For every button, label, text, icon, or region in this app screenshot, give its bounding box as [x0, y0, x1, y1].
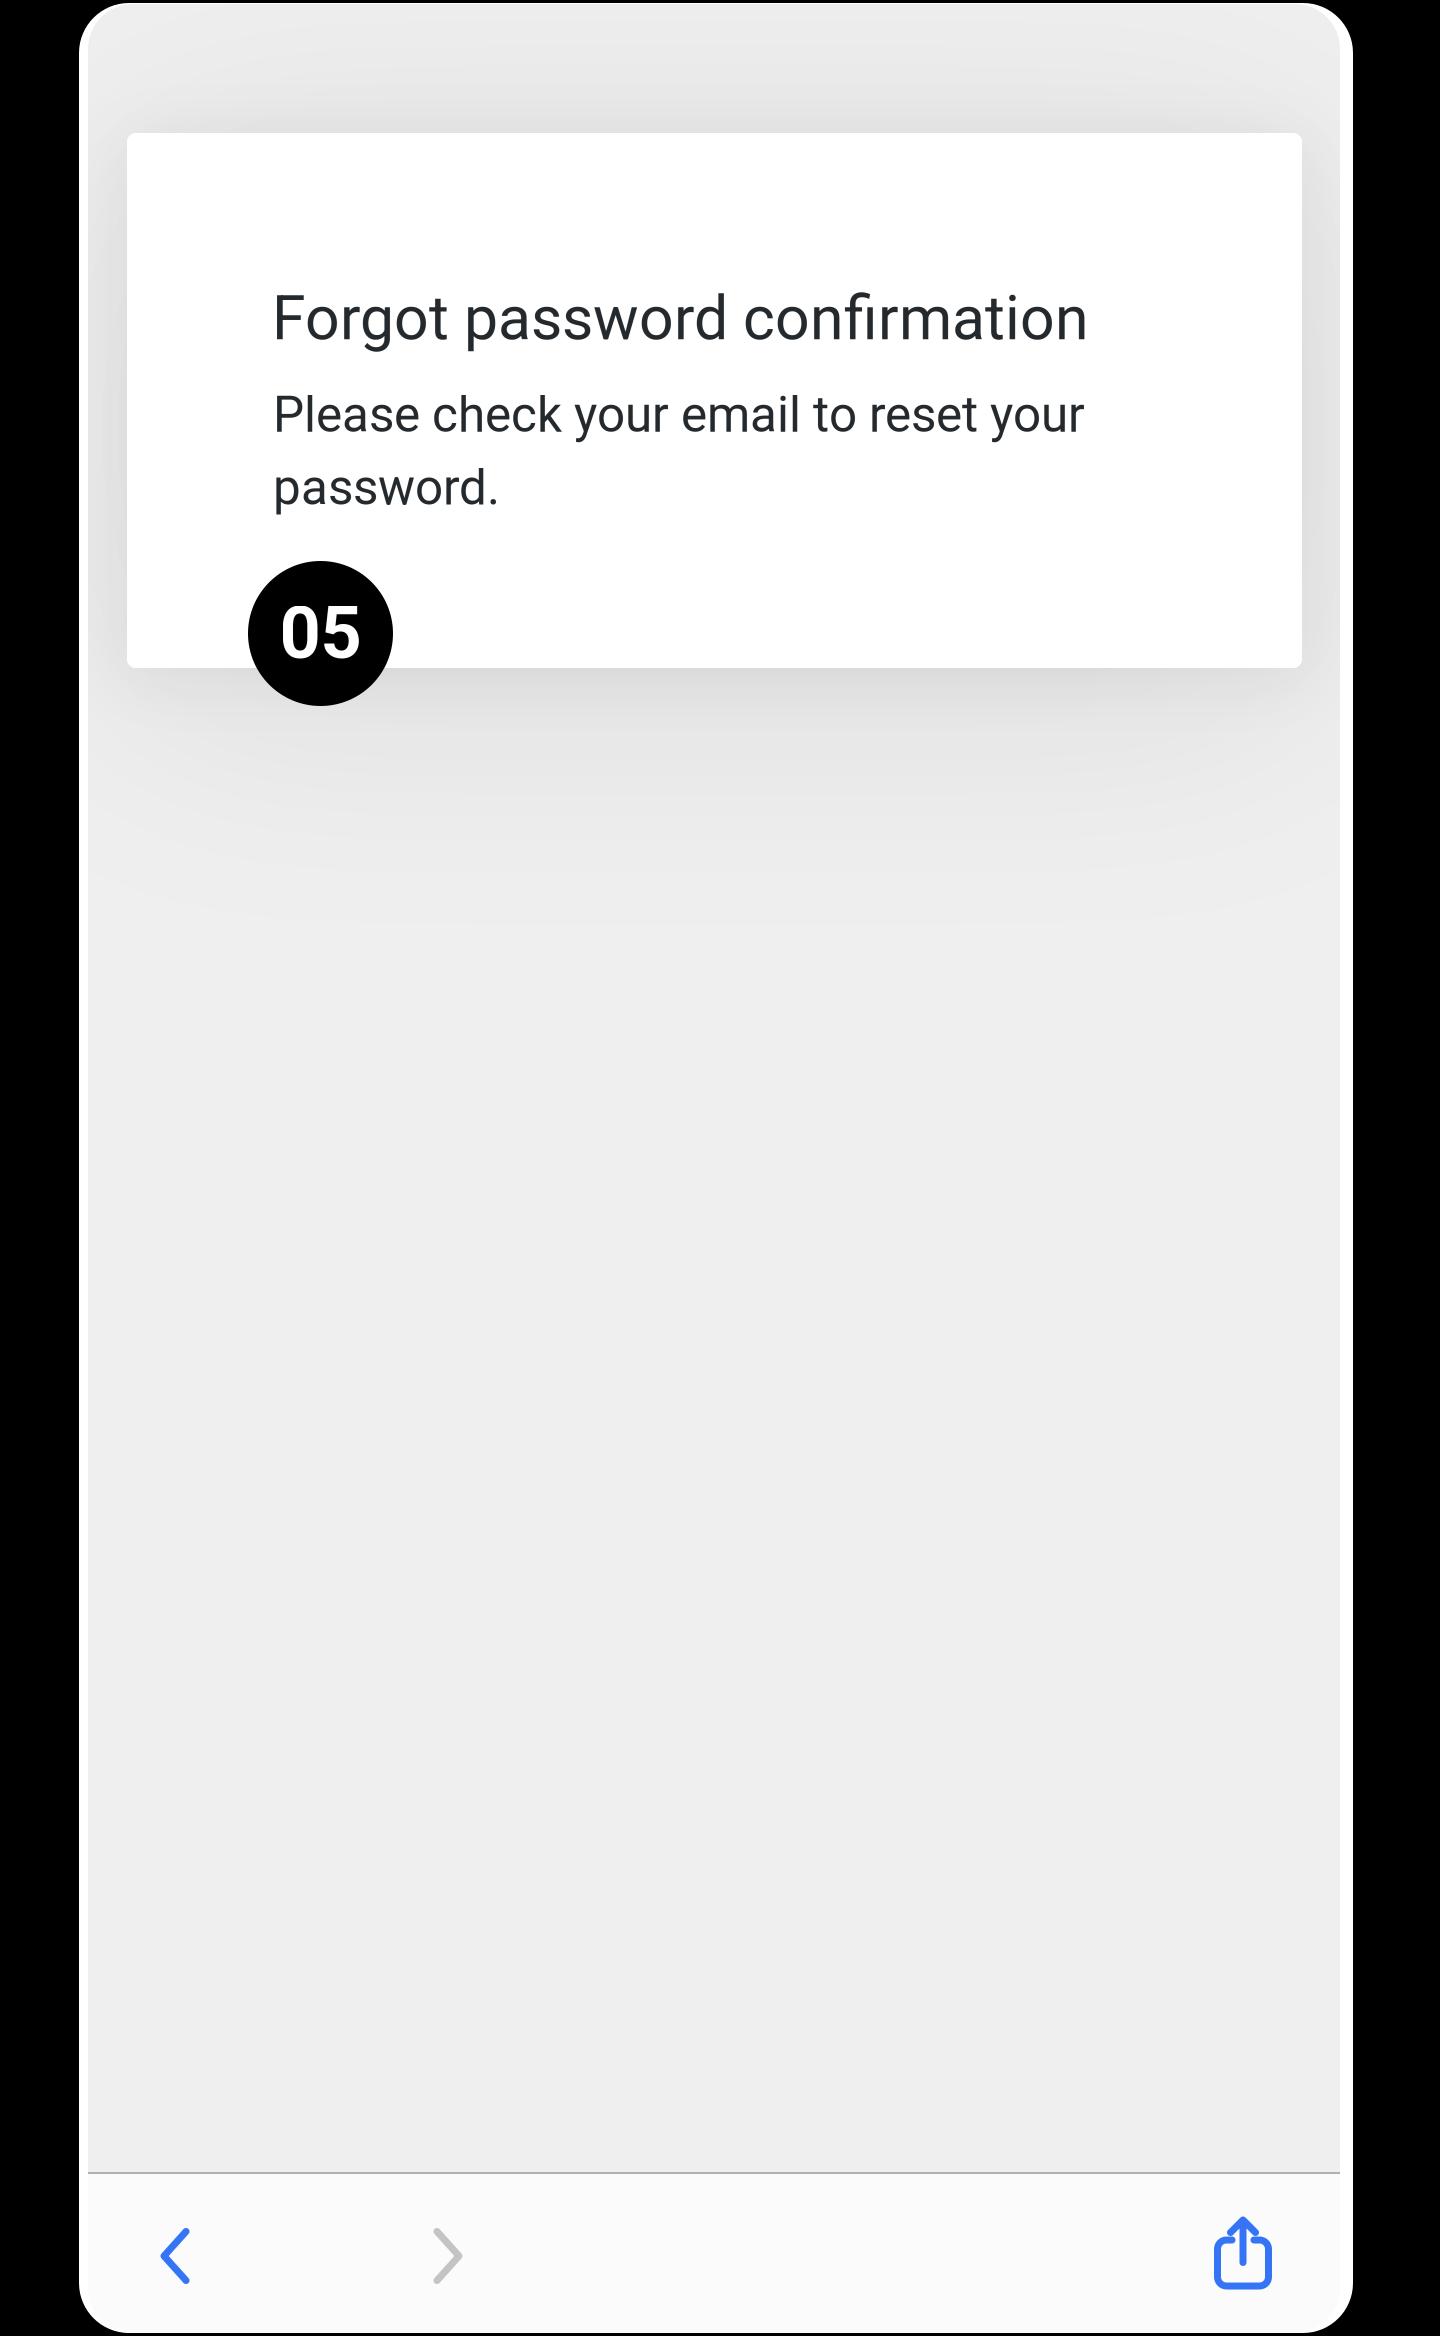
button[interactable]: Back — [115, 2196, 235, 2316]
staticText: 05 — [279, 591, 361, 676]
staticText: Forgot password confirmation — [272, 283, 1089, 354]
button[interactable]: Forward — [388, 2196, 508, 2316]
staticText: Please check your email to reset your pa… — [273, 386, 1085, 517]
button[interactable]: Share — [1183, 2193, 1303, 2313]
